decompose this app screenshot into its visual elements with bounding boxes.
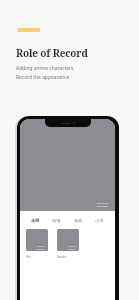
staticText: 全部 [31,218,40,223]
button[interactable]: 游戏 [73,218,84,223]
staticText: Adding anime characters [16,65,74,72]
staticText: 小说 [95,218,104,223]
staticText: Role of Record [16,46,88,60]
staticText: 动漫 [52,218,61,223]
staticText: Haruka [57,255,66,259]
staticText: ROLE OF [97,202,109,205]
button[interactable]: 小说 [94,218,105,223]
button[interactable]: ROLE OF [26,229,48,251]
staticText: RECORD [97,205,108,208]
button[interactable]: ROLE OF [57,229,79,251]
button[interactable]: 全部 [30,218,41,223]
staticText: Record the appearance [16,74,70,81]
staticText: Piel [26,255,31,259]
staticText: ROLE OF [37,245,46,248]
staticText: 游戏 [74,218,83,223]
button[interactable]: 动漫 [51,218,62,223]
staticText: ROLE OF [68,245,77,248]
staticText: RECORD [68,248,76,251]
staticText: RECORD [37,248,45,251]
